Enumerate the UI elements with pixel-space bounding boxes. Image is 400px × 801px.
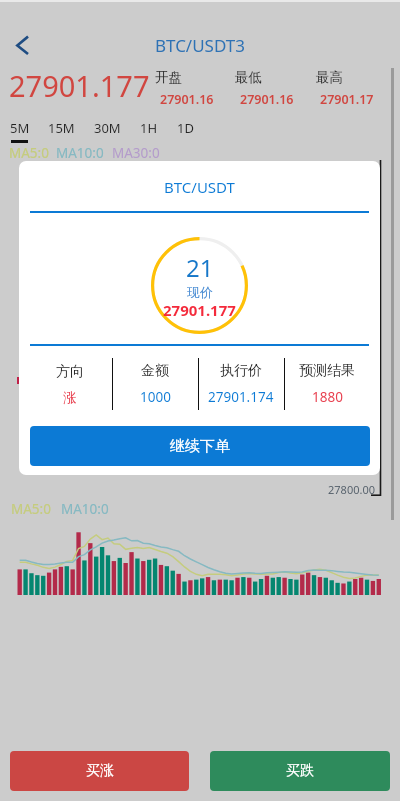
staticText: 27901.177 xyxy=(9,66,150,105)
button[interactable]: 继续下单 xyxy=(30,426,370,466)
staticText: 21 xyxy=(186,251,214,284)
staticText: 买跌 xyxy=(286,762,314,780)
staticText: 执行价 xyxy=(220,362,262,380)
button[interactable]: 15M xyxy=(48,119,75,137)
staticText: 5M xyxy=(10,119,30,137)
staticText: MA30:0 xyxy=(112,144,160,162)
staticText: BTC/USDT3 xyxy=(0,34,400,57)
staticText: MA5:0 xyxy=(9,144,49,162)
staticText: 最高 xyxy=(316,69,343,86)
staticText: 现价 xyxy=(187,284,213,300)
staticText: 27901.17 xyxy=(320,91,374,108)
staticText: 涨 xyxy=(63,389,77,406)
button[interactable]: Back xyxy=(2,25,42,65)
staticText: 开盘 xyxy=(155,69,182,86)
button[interactable]: 1H xyxy=(140,119,158,137)
staticText: 1H xyxy=(140,119,158,137)
staticText: 预测结果 xyxy=(299,362,355,380)
button[interactable]: 30M xyxy=(94,119,121,137)
button[interactable]: 1D xyxy=(177,119,194,137)
staticText: 继续下单 xyxy=(170,437,230,456)
staticText: 27901.174 xyxy=(208,388,274,406)
staticText: 1D xyxy=(177,119,194,137)
staticText: 金额 xyxy=(141,362,169,380)
staticText: BTC/USDT xyxy=(19,177,380,197)
staticText: 27901.16 xyxy=(240,91,294,108)
button[interactable]: 5M xyxy=(10,119,30,137)
staticText: 最低 xyxy=(235,69,262,86)
staticText: 方向 xyxy=(56,363,84,381)
staticText: 1880 xyxy=(312,388,343,406)
staticText: 买涨 xyxy=(86,762,114,780)
staticText: 15M xyxy=(48,119,75,137)
staticText: 27901.16 xyxy=(160,91,214,108)
staticText: 27800.00 xyxy=(328,482,375,497)
staticText: 27901.177 xyxy=(163,300,236,320)
button[interactable]: 买涨 xyxy=(10,751,189,791)
staticText: MA10:0 xyxy=(61,500,109,518)
button[interactable]: 买跌 xyxy=(210,751,390,791)
staticText: MA5:0 xyxy=(11,500,51,518)
staticText: 1000 xyxy=(140,388,171,406)
staticText: MA10:0 xyxy=(56,144,104,162)
staticText: 30M xyxy=(94,119,121,137)
